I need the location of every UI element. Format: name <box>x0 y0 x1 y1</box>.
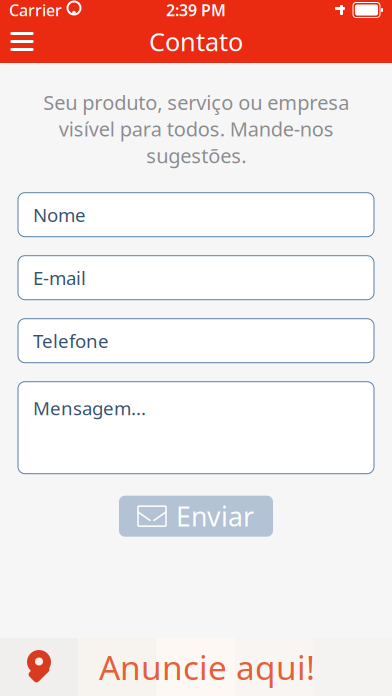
button[interactable]: Menu <box>0 20 44 63</box>
button[interactable]: Mensagem... <box>18 382 374 474</box>
staticText: Enviar <box>176 498 254 534</box>
button[interactable]: Telefone <box>18 319 374 363</box>
staticText: Carrier <box>9 0 62 21</box>
button[interactable]: Anuncie aqui! <box>0 638 392 696</box>
staticText: E-mail <box>33 265 86 290</box>
staticText: Telefone <box>33 328 109 353</box>
staticText: Contato <box>149 25 243 58</box>
staticText: Anuncie aqui! <box>99 645 315 689</box>
staticText: 2:39 PM <box>166 0 226 21</box>
button[interactable]: Enviar <box>119 496 273 537</box>
staticText: Nome <box>33 202 86 227</box>
button[interactable]: Nome <box>18 193 374 237</box>
button[interactable]: E-mail <box>18 256 374 300</box>
staticText: Mensagem... <box>33 396 146 420</box>
staticText: Seu produto, serviço ou empresa visível … <box>43 89 349 169</box>
